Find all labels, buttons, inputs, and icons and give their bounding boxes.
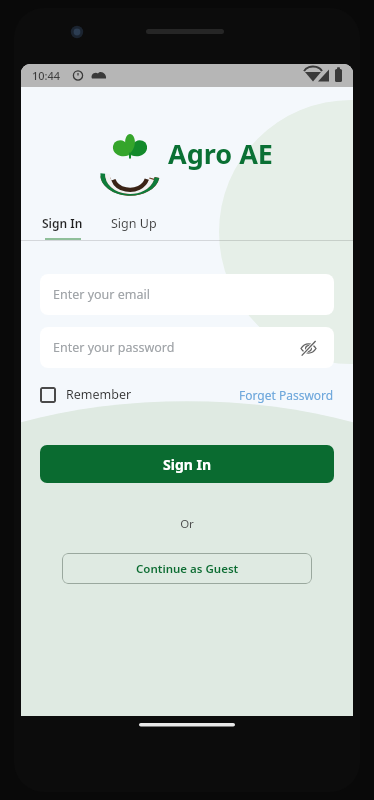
button[interactable]: Forget Password	[239, 387, 334, 403]
staticText: Forget Password	[239, 387, 334, 403]
button[interactable]: Continue as Guest	[62, 553, 312, 584]
button[interactable]: Sign In	[40, 445, 334, 483]
button[interactable]: Sign Up	[109, 215, 159, 232]
staticText: Sign In	[42, 215, 83, 231]
staticText: Enter your email	[53, 286, 150, 303]
staticText: Sign Up	[111, 215, 157, 232]
button[interactable]: Enter your password	[40, 327, 334, 368]
button[interactable]: Show password	[295, 335, 321, 361]
staticText: 10:44	[32, 68, 61, 83]
button[interactable]: Enter your email	[40, 274, 334, 315]
staticText: Sign In	[163, 455, 212, 474]
staticText: Continue as Guest	[136, 561, 239, 577]
button[interactable]: Sign In	[40, 215, 85, 240]
staticText: Agro AE	[168, 135, 273, 172]
button[interactable]: Remember	[40, 386, 132, 403]
staticText: Or	[40, 516, 334, 532]
staticText: Remember	[66, 386, 132, 403]
staticText: Enter your password	[53, 339, 175, 356]
